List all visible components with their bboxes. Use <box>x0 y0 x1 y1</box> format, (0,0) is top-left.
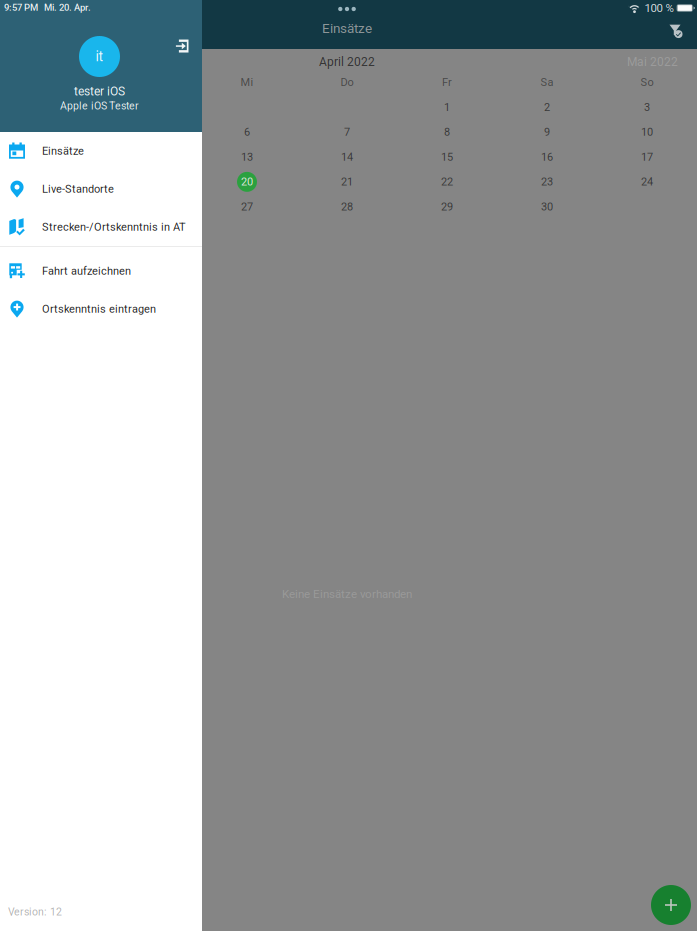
button[interactable]: Strecken-/Ortskenntnis in AT <box>0 208 202 246</box>
staticText: 6 <box>244 126 250 138</box>
staticText: April 2022 <box>319 55 375 69</box>
button[interactable]: Fahrt aufzeichnen <box>0 252 202 290</box>
staticText: 100 % <box>644 1 673 15</box>
staticText: 17 <box>641 150 653 163</box>
staticText: 23 <box>541 175 553 188</box>
staticText: 29 <box>441 200 453 213</box>
staticText: 10 <box>641 126 653 138</box>
staticText: it <box>95 48 103 65</box>
staticText: 3 <box>644 101 650 114</box>
staticText: 7 <box>344 126 350 138</box>
staticText: Live-Standorte <box>42 183 114 195</box>
staticText: 20 <box>241 175 253 188</box>
staticText: 30 <box>541 200 553 213</box>
button[interactable]: Filter <box>661 16 691 46</box>
staticText: 18 <box>41 175 53 188</box>
staticText: Mai 2022 <box>627 55 678 69</box>
staticText: 24 <box>641 175 653 188</box>
staticText: 13 <box>241 150 253 163</box>
staticText: 15 <box>441 150 453 163</box>
staticText: 1 <box>444 101 450 114</box>
staticText: Mi <box>240 76 253 89</box>
staticText: So <box>640 76 653 89</box>
staticText: Strecken-/Ortskenntnis in AT <box>42 221 186 233</box>
staticText: Apple iOS Tester <box>60 100 139 112</box>
staticText: Einsätze <box>42 145 84 157</box>
staticText: Do <box>340 76 353 89</box>
button[interactable]: Live-Standorte <box>0 170 202 208</box>
staticText: Ortskenntnis eintragen <box>42 303 156 315</box>
staticText: 4 <box>44 126 50 138</box>
staticText: 21 <box>341 175 353 188</box>
staticText: 14 <box>341 150 353 163</box>
button[interactable]: Neuer Einsatz <box>645 879 697 931</box>
staticText: 11 <box>41 150 53 163</box>
staticText: 5 <box>144 126 150 138</box>
staticText: Keine Einsätze vorhanden <box>282 587 412 601</box>
staticText: 9:57 PM Mi. 20. Apr. <box>4 2 91 13</box>
staticText: Einsätze <box>322 21 372 36</box>
button[interactable]: Einsätze <box>0 132 202 170</box>
staticText: Sa <box>540 76 553 89</box>
button[interactable]: Abmelden <box>168 32 196 60</box>
staticText: 22 <box>441 175 453 188</box>
staticText: Version: 12 <box>8 906 62 918</box>
staticText: tester iOS <box>74 84 125 99</box>
staticText: Fr <box>442 76 452 89</box>
staticText: 27 <box>241 200 253 213</box>
staticText: 16 <box>541 150 553 163</box>
staticText: 8 <box>444 126 450 138</box>
staticText: 9 <box>544 126 550 138</box>
staticText: Fahrt aufzeichnen <box>42 265 131 277</box>
button[interactable]: Ortskenntnis eintragen <box>0 290 202 328</box>
staticText: 2 <box>544 101 550 114</box>
staticText: 28 <box>341 200 353 213</box>
